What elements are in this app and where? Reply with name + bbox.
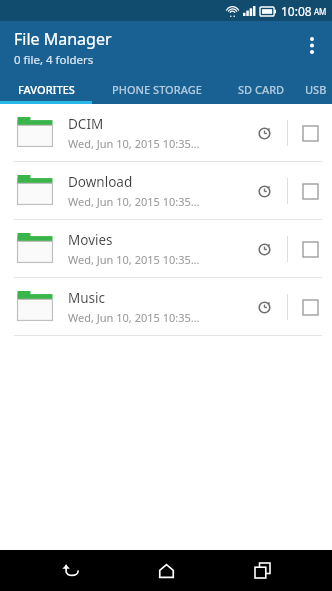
staticText: Music bbox=[68, 289, 106, 307]
staticText: USB bbox=[305, 82, 327, 97]
staticText: Wed, Jun 10, 2015 10:35… bbox=[68, 194, 200, 209]
button[interactable]: PHONE STORAGE bbox=[92, 75, 222, 104]
button[interactable]: Select DCIM bbox=[288, 111, 332, 155]
staticText: FAVORITES bbox=[18, 82, 75, 97]
staticText: 10:08 bbox=[281, 3, 312, 19]
button[interactable]: Download bbox=[0, 162, 332, 219]
button[interactable]: Back bbox=[44, 550, 96, 591]
button[interactable]: Recent bbox=[249, 176, 279, 206]
button[interactable]: Select Music bbox=[288, 285, 332, 329]
staticText: DCIM bbox=[68, 115, 104, 133]
staticText: File Manager bbox=[14, 28, 112, 50]
staticText: Wed, Jun 10, 2015 10:35… bbox=[68, 136, 200, 151]
staticText: Wed, Jun 10, 2015 10:35… bbox=[68, 252, 200, 267]
button[interactable]: Recent bbox=[249, 118, 279, 148]
button[interactable]: Select Movies bbox=[288, 227, 332, 271]
staticText: SD CARD bbox=[238, 82, 285, 97]
button[interactable]: SD CARD bbox=[222, 75, 300, 104]
button[interactable]: Recent bbox=[249, 292, 279, 322]
button[interactable]: Recents bbox=[236, 550, 288, 591]
button[interactable]: Music bbox=[0, 278, 332, 335]
button[interactable]: Recent bbox=[249, 234, 279, 264]
staticText: 0 file, 4 folders bbox=[14, 52, 94, 68]
button[interactable]: DCIM bbox=[0, 104, 332, 161]
staticText: Wed, Jun 10, 2015 10:35… bbox=[68, 310, 200, 325]
button[interactable]: Select Download bbox=[288, 169, 332, 213]
staticText: Download bbox=[68, 173, 133, 191]
staticText: PHONE STORAGE bbox=[112, 82, 202, 97]
button[interactable]: FAVORITES bbox=[0, 75, 92, 104]
button[interactable]: Home bbox=[140, 550, 192, 591]
staticText: AM bbox=[314, 6, 327, 17]
button[interactable]: Movies bbox=[0, 220, 332, 277]
staticText: Movies bbox=[68, 231, 113, 249]
button[interactable]: More options bbox=[292, 25, 332, 65]
button[interactable]: USB bbox=[300, 75, 332, 104]
